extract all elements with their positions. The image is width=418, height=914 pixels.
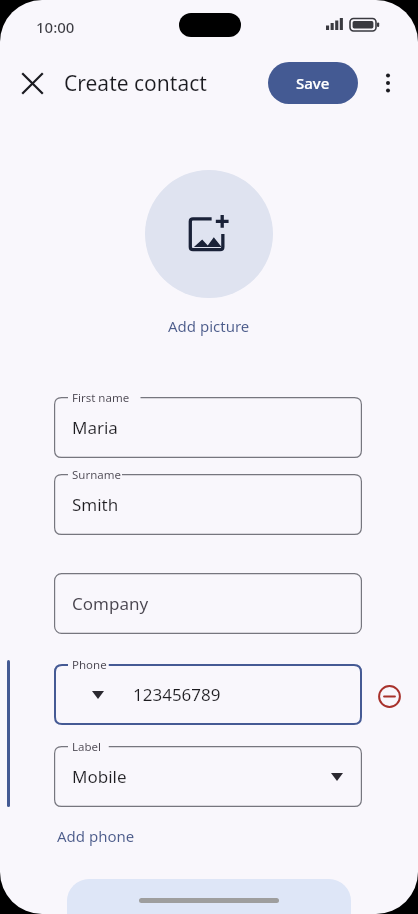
staticText: Surname <box>72 467 121 483</box>
staticText: 123456789 <box>133 683 221 706</box>
button[interactable]: Add picture <box>162 314 256 338</box>
button[interactable]: Close <box>8 59 56 107</box>
button[interactable]: Add phone <box>51 823 141 849</box>
button[interactable]: Label <box>54 746 362 807</box>
staticText: Label <box>72 739 102 755</box>
staticText: Maria <box>72 416 118 439</box>
staticText: Create contact <box>64 69 207 98</box>
button[interactable]: Surname <box>54 474 362 535</box>
staticText: Smith <box>72 493 119 516</box>
staticText: 10:00 <box>36 17 75 37</box>
button[interactable]: More options <box>364 59 412 107</box>
staticText: First name <box>72 390 130 406</box>
button[interactable]: Save <box>268 62 358 104</box>
staticText: Add picture <box>168 316 250 336</box>
button[interactable]: Company <box>54 573 362 634</box>
staticText: Company <box>72 592 149 615</box>
staticText: Phone <box>72 657 107 673</box>
button[interactable]: First name <box>54 397 362 458</box>
staticText: Mobile <box>72 765 127 788</box>
staticText: Save <box>296 73 330 93</box>
staticText: Add phone <box>57 826 135 846</box>
button[interactable]: Remove phone <box>367 674 411 718</box>
button[interactable]: Phone <box>54 664 362 725</box>
button[interactable]: Add picture <box>145 170 273 298</box>
